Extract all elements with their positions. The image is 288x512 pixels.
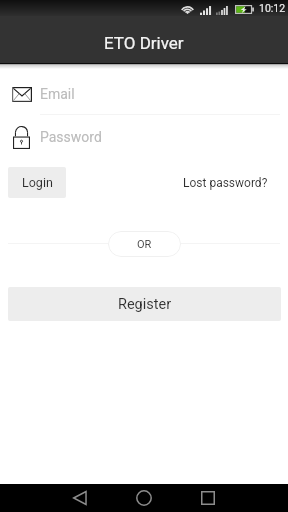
button[interactable]: Back — [55, 484, 104, 512]
button[interactable]: Register — [8, 287, 281, 321]
staticText: Email — [40, 86, 75, 102]
staticText: ETO Driver — [104, 33, 184, 53]
button[interactable]: Email — [8, 76, 280, 115]
button[interactable]: OR — [108, 231, 181, 257]
staticText: Password — [40, 129, 102, 145]
button[interactable]: Password — [8, 120, 280, 156]
button[interactable]: Login — [8, 167, 66, 198]
staticText: Lost password? — [183, 176, 268, 190]
button[interactable]: Lost password? — [174, 167, 276, 199]
staticText: OR — [137, 238, 152, 251]
staticText: Register — [118, 296, 172, 313]
staticText: Login — [22, 175, 53, 190]
button[interactable]: Home — [120, 484, 168, 512]
staticText: 10:12 — [259, 2, 286, 14]
button[interactable]: Recents — [183, 484, 232, 512]
